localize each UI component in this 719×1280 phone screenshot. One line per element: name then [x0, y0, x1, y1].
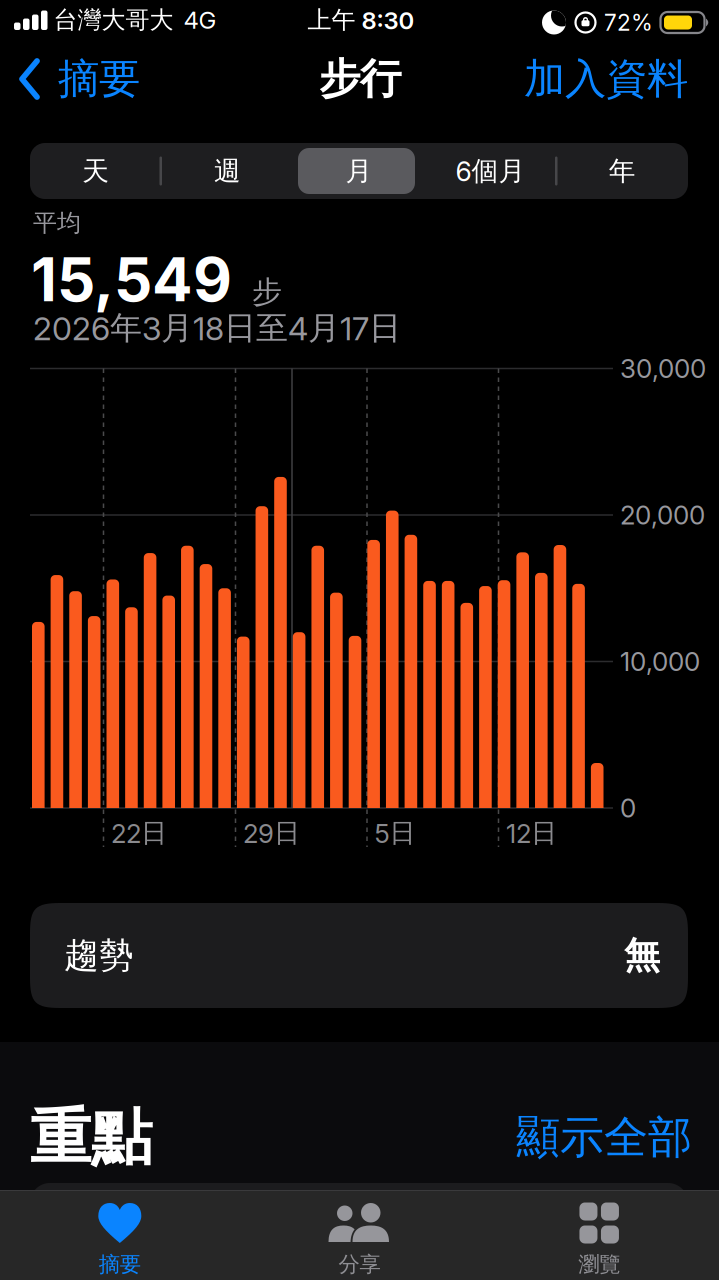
staticText: 4G — [183, 5, 216, 34]
button[interactable]: 年 — [556, 143, 688, 199]
button[interactable]: 顯示全部 — [516, 1110, 692, 1165]
staticText: 20,000 — [620, 499, 705, 531]
staticText: 15,549 — [31, 243, 232, 316]
staticText: 天 — [82, 154, 109, 188]
staticText: 週 — [214, 154, 241, 188]
button[interactable]: 月 — [293, 143, 425, 199]
staticText: 年 — [609, 154, 636, 188]
button[interactable]: 加入資料 — [524, 53, 688, 105]
button[interactable]: 摘要 — [19, 53, 140, 105]
staticText: 步 — [252, 273, 282, 311]
staticText: 瀏覽 — [578, 1251, 620, 1278]
button[interactable]: 6個月 — [425, 143, 556, 199]
button[interactable]: 天 — [30, 143, 162, 199]
staticText: 台灣大哥大 — [53, 5, 173, 35]
staticText: 摘要 — [58, 53, 140, 105]
button[interactable]: 趨勢 — [30, 903, 688, 1008]
staticText: 5日 — [374, 817, 415, 849]
staticText: 30,000 — [620, 353, 706, 384]
staticText: 0 — [620, 792, 636, 824]
staticText: 摘要 — [99, 1251, 141, 1278]
staticText: 10,000 — [620, 646, 700, 677]
staticText: 趨勢 — [64, 934, 134, 977]
staticText: 上午 8:30 — [307, 5, 414, 35]
staticText: 29日 — [243, 817, 300, 849]
button[interactable]: 瀏覽 — [479, 1190, 719, 1280]
staticText: 6個月 — [456, 154, 526, 188]
button[interactable]: 週 — [162, 143, 293, 199]
button[interactable]: 分享 — [240, 1190, 479, 1280]
staticText: 12日 — [506, 817, 557, 849]
staticText: 加入資料 — [524, 53, 688, 105]
staticText: 步行 — [319, 53, 401, 105]
staticText: 22日 — [111, 817, 167, 849]
staticText: 顯示全部 — [516, 1110, 692, 1165]
button[interactable]: 摘要 — [0, 1190, 240, 1280]
staticText: 平均 — [33, 208, 81, 238]
staticText: 重點 — [30, 1099, 152, 1176]
staticText: 分享 — [338, 1251, 380, 1278]
staticText: 無 — [624, 933, 660, 978]
staticText: 月 — [345, 154, 372, 188]
staticText: 2026年3月18日至4月17日 — [33, 308, 401, 348]
staticText: 72% — [604, 9, 653, 36]
